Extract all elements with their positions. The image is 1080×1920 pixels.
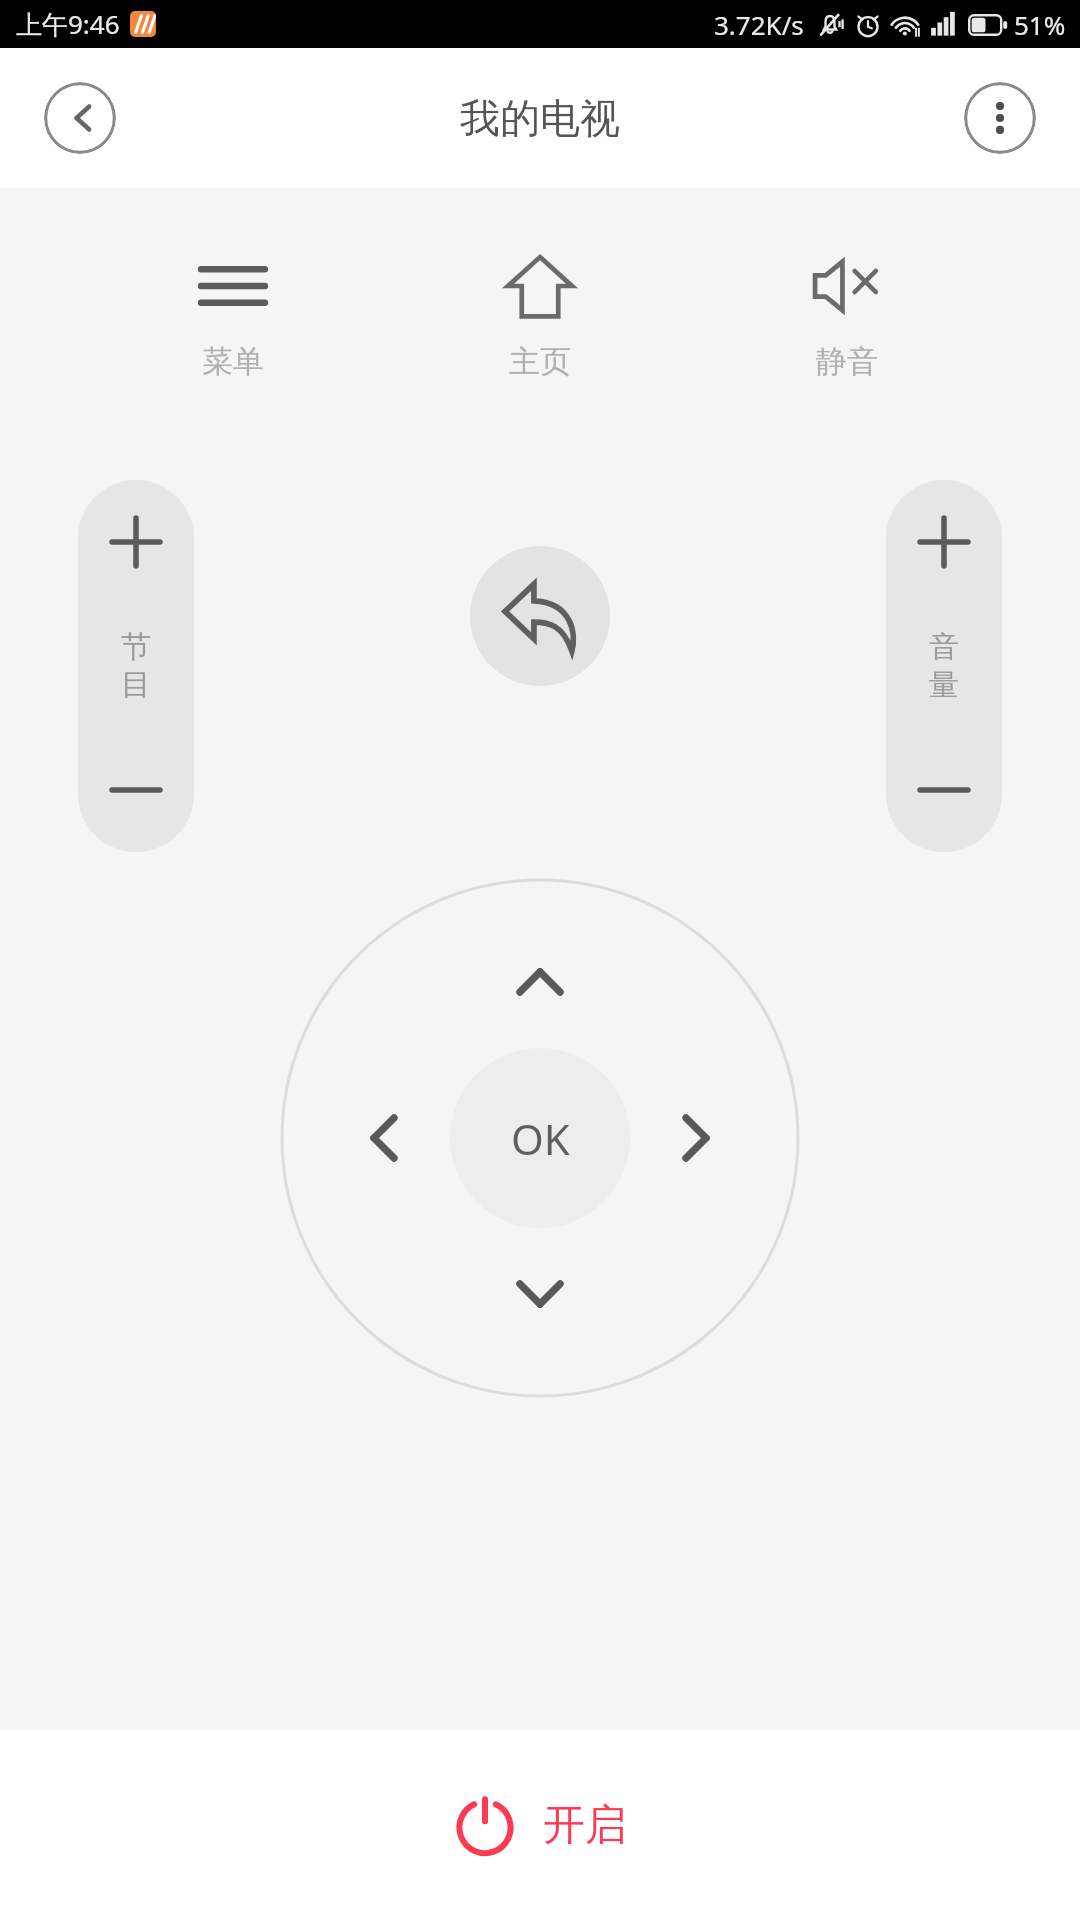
staticText: 音 — [929, 628, 959, 666]
staticText: 3.72K/s — [714, 7, 804, 42]
button[interactable]: 节目 down — [78, 728, 194, 852]
button[interactable]: Right — [648, 1090, 744, 1186]
button[interactable]: 音量 down — [886, 728, 1002, 852]
staticText: 开启 — [543, 1799, 627, 1852]
button[interactable]: 菜单 — [159, 240, 307, 389]
staticText: 量 — [929, 666, 959, 704]
staticText: 主页 — [509, 342, 571, 381]
button[interactable]: More options — [964, 82, 1036, 154]
staticText: 我的电视 — [460, 93, 620, 143]
button[interactable]: 静音 — [773, 240, 921, 389]
staticText: 目 — [121, 666, 151, 704]
button[interactable]: Back — [44, 82, 116, 154]
staticText: 节 — [121, 628, 151, 666]
button[interactable]: Left — [336, 1090, 432, 1186]
staticText: 静音 — [816, 342, 878, 381]
button[interactable]: Back — [470, 546, 610, 686]
button[interactable]: 音量 up — [886, 480, 1002, 604]
button[interactable]: Up — [492, 934, 588, 1030]
button[interactable]: Down — [492, 1246, 588, 1342]
button[interactable]: OK — [450, 1048, 630, 1228]
button[interactable]: 开启 — [425, 1779, 655, 1871]
button[interactable]: 节目 up — [78, 480, 194, 604]
staticText: 菜单 — [202, 342, 264, 381]
staticText: OK — [511, 1110, 570, 1167]
staticText: 上午9:46 — [16, 6, 120, 42]
staticText: 51% — [1014, 7, 1066, 42]
button[interactable]: 主页 — [466, 240, 614, 389]
